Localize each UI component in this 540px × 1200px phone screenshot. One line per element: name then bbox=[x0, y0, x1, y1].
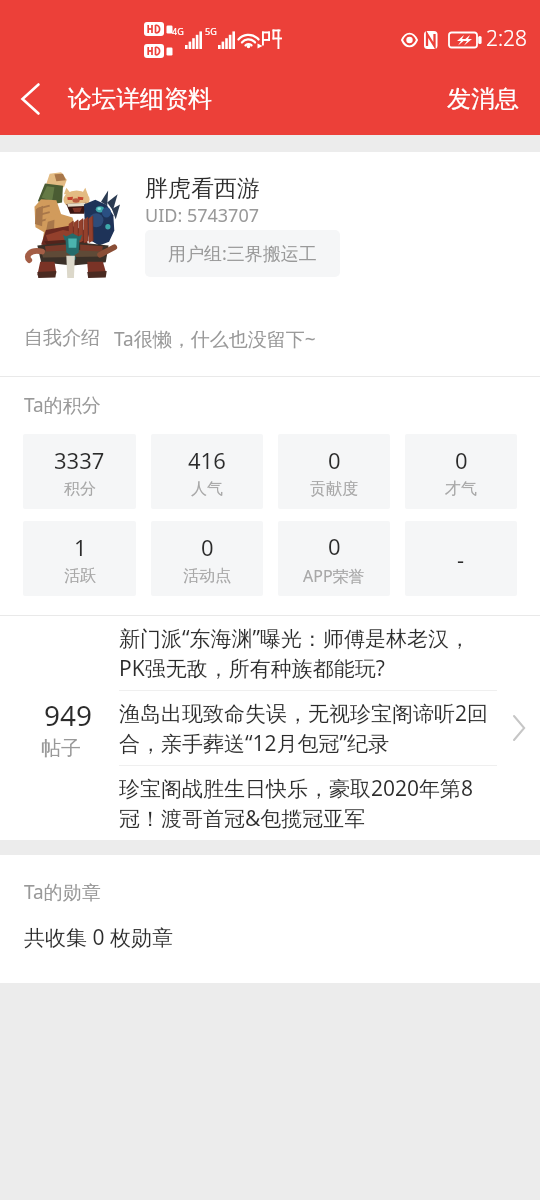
staticText: 发消息 bbox=[447, 84, 519, 114]
button[interactable]: 3337 bbox=[23, 434, 136, 509]
staticText: 1 bbox=[74, 532, 87, 562]
staticText: 416 bbox=[188, 445, 226, 475]
staticText: 才气 bbox=[445, 479, 477, 499]
staticText: 论坛详细资料 bbox=[68, 84, 212, 114]
button[interactable]: 用户组:三界搬运工 bbox=[145, 230, 340, 277]
staticText: 新门派“东海渊”曝光：师傅是林老汉，PK强无敌，所有种族都能玩? bbox=[119, 624, 490, 682]
staticText: 2:28 bbox=[486, 24, 528, 53]
staticText: Ta很懒，什么也没留下~ bbox=[114, 326, 316, 352]
button[interactable]: 949 bbox=[0, 616, 540, 840]
staticText: 自我介绍 bbox=[24, 326, 100, 350]
staticText: 共收集 0 枚勋章 bbox=[24, 923, 173, 952]
staticText: Ta的勋章 bbox=[24, 879, 101, 905]
staticText: 积分 bbox=[64, 479, 96, 499]
button[interactable]: 0 bbox=[278, 434, 390, 509]
staticText: APP荣誉 bbox=[303, 565, 365, 587]
button[interactable]: Back bbox=[0, 68, 58, 135]
staticText: 胖虎看西游 bbox=[145, 174, 260, 203]
other: More posts bbox=[497, 713, 540, 743]
button[interactable]: 416 bbox=[151, 434, 263, 509]
button[interactable]: 0 bbox=[151, 521, 263, 596]
staticText: - bbox=[457, 544, 465, 574]
button[interactable]: 0 bbox=[278, 521, 390, 596]
staticText: 3337 bbox=[54, 445, 105, 475]
staticText: 0 bbox=[455, 445, 468, 475]
staticText: 用户组:三界搬运工 bbox=[168, 241, 317, 266]
staticText: 0 bbox=[328, 445, 341, 475]
staticText: 珍宝阁战胜生日快乐，豪取2020年第8冠！渡哥首冠&包揽冠亚军 bbox=[119, 774, 490, 832]
staticText: 贡献度 bbox=[310, 479, 358, 499]
staticText: 0 bbox=[328, 531, 341, 561]
staticText: 4G bbox=[172, 25, 184, 37]
staticText: UID: 5743707 bbox=[145, 203, 259, 228]
staticText: 活跃 bbox=[64, 566, 96, 586]
button[interactable]: 0 bbox=[405, 434, 517, 509]
staticText: 帖子 bbox=[41, 736, 81, 761]
staticText: 人气 bbox=[191, 479, 223, 499]
staticText: 5G bbox=[205, 25, 217, 37]
button[interactable]: - bbox=[405, 521, 517, 596]
staticText: 949 bbox=[44, 696, 93, 734]
staticText: 活动点 bbox=[183, 566, 231, 586]
button[interactable]: 发消息 bbox=[447, 84, 540, 135]
button[interactable]: 1 bbox=[23, 521, 136, 596]
staticText: 渔岛出现致命失误，无视珍宝阁谛听2回合，亲手葬送“12月包冠”纪录 bbox=[119, 699, 490, 757]
staticText: Ta的积分 bbox=[24, 392, 101, 418]
staticText: 0 bbox=[201, 532, 214, 562]
